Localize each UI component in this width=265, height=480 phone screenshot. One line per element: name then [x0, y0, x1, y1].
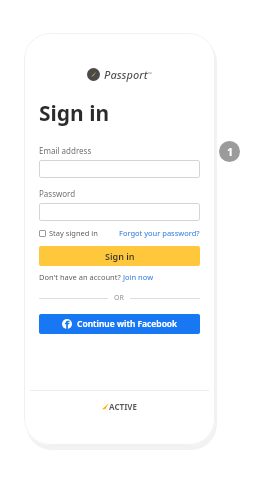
- staticText: ™: [148, 71, 152, 78]
- staticText: Password: [39, 188, 76, 199]
- button[interactable]: Forgot your password?: [119, 228, 200, 238]
- staticText: Continue with Facebook: [77, 318, 178, 330]
- staticText: 1: [227, 145, 233, 159]
- staticText: OR: [114, 293, 124, 303]
- staticText: ACTIVE: [109, 401, 137, 412]
- button[interactable]: Step 1: [219, 141, 240, 162]
- staticText: Sign in: [39, 99, 110, 128]
- staticText: Passport: [104, 67, 148, 82]
- button[interactable]: Sign in: [39, 246, 200, 266]
- staticText: Don't have an account?: [39, 272, 123, 282]
- staticText: Sign in: [105, 250, 135, 262]
- button[interactable]: Continue with Facebook: [39, 314, 200, 334]
- staticText: Stay signed in: [49, 228, 98, 238]
- button[interactable]: Stay signed in: [39, 228, 98, 238]
- button[interactable]: [39, 203, 200, 221]
- button[interactable]: Join now: [123, 272, 154, 282]
- staticText: Email address: [39, 145, 92, 156]
- button[interactable]: [39, 160, 200, 178]
